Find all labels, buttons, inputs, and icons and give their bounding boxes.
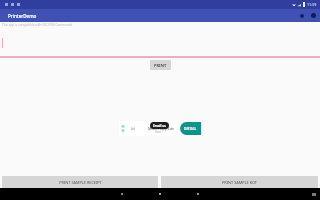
staticText: Mobile App Lite xyxy=(148,126,175,131)
staticText: Ad xyxy=(131,127,135,131)
button[interactable]: PRINT xyxy=(150,60,171,70)
button[interactable]: Email us xyxy=(150,122,169,129)
button[interactable]: PRINT SAMPLE KOT xyxy=(161,176,318,188)
staticText: PRINT SAMPLE RECEIPT xyxy=(59,180,102,185)
button[interactable]: Back xyxy=(117,189,127,199)
staticText: PrinterDemo xyxy=(8,13,37,19)
button[interactable]: Home xyxy=(155,189,165,199)
button[interactable]: INSTALL xyxy=(180,122,201,135)
button[interactable]: More options xyxy=(309,11,318,20)
button[interactable]: Bluetooth xyxy=(297,11,306,20)
staticText: PRINT SAMPLE KOT xyxy=(222,180,257,185)
staticText: This app is compatible with ESC/POS Comm… xyxy=(2,23,73,27)
button[interactable]: Recents xyxy=(193,189,203,199)
staticText: Email us xyxy=(153,124,166,128)
button[interactable]: PRINT SAMPLE RECEIPT xyxy=(2,176,158,188)
staticText: PRINT xyxy=(154,63,167,68)
staticText: INSTALL xyxy=(184,127,197,131)
staticText: 11:39 xyxy=(307,2,317,7)
staticText: Free xyxy=(155,130,161,134)
